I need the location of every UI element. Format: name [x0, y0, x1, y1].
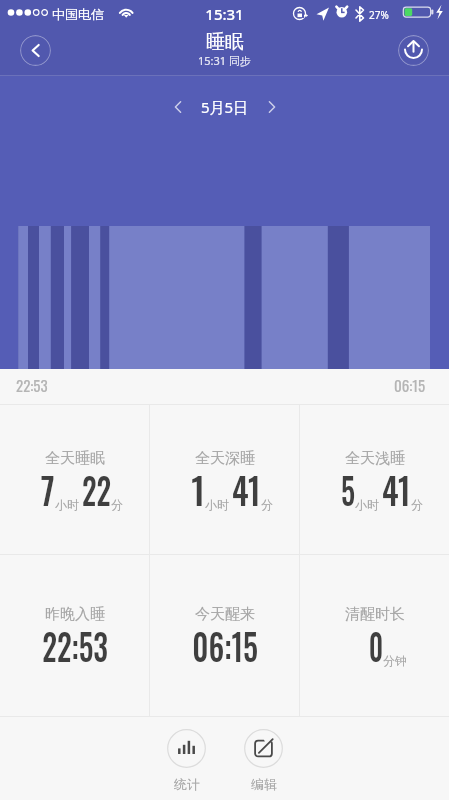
staticText: 22 — [82, 462, 111, 517]
staticText: 0 — [369, 618, 383, 673]
button[interactable]: 今天醒来 — [150, 555, 299, 716]
staticText: 分 — [261, 497, 273, 512]
staticText: 06:15 — [394, 374, 426, 396]
button[interactable]: 全天浅睡 — [300, 405, 449, 554]
button[interactable]: 全天睡眠 — [0, 405, 149, 554]
staticText: 22:53 — [42, 618, 109, 673]
staticText: 全天深睡 — [195, 449, 255, 468]
staticText: 今天醒来 — [195, 605, 255, 624]
staticText: 06:15 — [192, 618, 259, 673]
staticText: 统计 — [174, 776, 200, 792]
staticText: 分 — [411, 497, 423, 512]
staticText: 7 — [41, 462, 55, 517]
button[interactable]: Edit — [244, 729, 283, 792]
staticText: 27% — [369, 8, 389, 22]
staticText: 15:31 同步 — [198, 53, 251, 68]
staticText: 小时 — [355, 497, 379, 512]
staticText: 5月5日 — [201, 97, 249, 117]
staticText: 全天浅睡 — [345, 449, 405, 468]
staticText: 5 — [341, 462, 356, 517]
staticText: 分钟 — [383, 653, 407, 668]
staticText: 22:53 — [16, 374, 48, 396]
staticText: 睡眠 — [206, 30, 244, 54]
staticText: 小时 — [205, 497, 229, 512]
staticText: 全天睡眠 — [45, 449, 105, 468]
staticText: 1 — [191, 462, 206, 517]
button[interactable]: Next day — [257, 92, 287, 122]
staticText: 41 — [382, 462, 411, 517]
staticText: 编辑 — [251, 776, 277, 792]
staticText: 分 — [111, 497, 123, 512]
button[interactable]: Back — [20, 35, 51, 66]
button[interactable]: 昨晚入睡 — [0, 555, 149, 716]
button[interactable]: Statistics — [167, 729, 206, 792]
staticText: 昨晚入睡 — [45, 605, 105, 624]
staticText: 15:31 — [0, 4, 449, 24]
staticText: 清醒时长 — [345, 605, 405, 624]
button[interactable]: Share — [398, 35, 429, 66]
button[interactable]: 全天深睡 — [150, 405, 299, 554]
staticText: 小时 — [55, 497, 79, 512]
staticText: 中国电信 — [52, 6, 104, 22]
staticText: 41 — [232, 462, 261, 517]
button[interactable]: Previous day — [163, 92, 193, 122]
button[interactable]: 清醒时长 — [300, 555, 449, 716]
